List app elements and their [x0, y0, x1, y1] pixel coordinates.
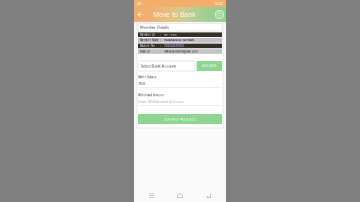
staticText: Move to Bank — [153, 10, 196, 19]
button[interactable]: Back — [134, 7, 147, 22]
staticText: 4G — [137, 1, 142, 6]
staticText: : — [160, 38, 161, 42]
staticText: Wallet Balance — [138, 75, 157, 79]
staticText: : — [160, 44, 161, 48]
staticText: ADD BANK — [202, 64, 217, 68]
staticText: Member Details — [140, 25, 169, 30]
staticText: : — [160, 33, 161, 36]
button[interactable]: SUBMIT REQUEST — [138, 114, 222, 124]
staticText: Withdrawal Amount — [138, 93, 164, 97]
button[interactable]: Select Bank Account — [138, 61, 195, 71]
staticText: : — [160, 50, 161, 53]
button[interactable]: Back — [197, 189, 219, 201]
staticText: mahananda98@gmail.com — [164, 50, 197, 53]
staticText: Select Bank Account — [140, 63, 175, 69]
staticText: Member Id — [140, 33, 155, 36]
staticText: 70.0 — [138, 81, 145, 86]
staticText: HAVANANDA BARMAN — [164, 38, 194, 42]
staticText: SUBMIT REQUEST — [164, 116, 196, 122]
staticText: 12:47 — [214, 1, 223, 6]
button[interactable]: Help — [213, 7, 226, 22]
button[interactable]: Recent apps — [140, 189, 162, 201]
button[interactable]: Home — [169, 189, 191, 201]
staticText: Mobile No — [140, 44, 155, 48]
staticText: MT17886 — [164, 33, 177, 36]
button[interactable]: ADD BANK — [197, 61, 222, 71]
staticText: Enter Withdrawal Amount — [138, 99, 183, 104]
staticText: 7003450903 — [164, 44, 184, 48]
staticText: Email Id — [140, 50, 150, 53]
staticText: Member Name — [140, 38, 159, 42]
